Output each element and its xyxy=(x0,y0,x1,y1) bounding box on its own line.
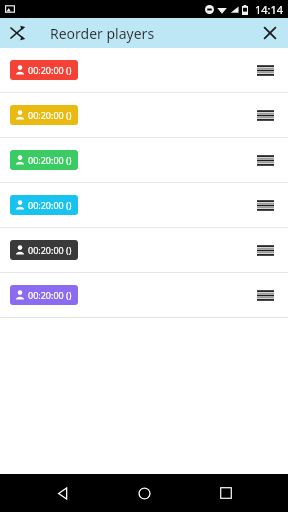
staticText: 00:20:00 () xyxy=(28,154,72,166)
button[interactable]: 00:20:00 () xyxy=(10,240,78,260)
button[interactable]: 00:20:00 () xyxy=(10,285,78,305)
button[interactable]: 00:20:00 () xyxy=(0,228,288,272)
button[interactable]: Drag to reorder xyxy=(252,147,278,173)
button[interactable]: 00:20:00 () xyxy=(0,48,288,92)
button[interactable]: Close xyxy=(256,19,284,47)
button[interactable]: Drag to reorder xyxy=(252,282,278,308)
staticText: 00:20:00 () xyxy=(28,64,72,76)
button[interactable]: Drag to reorder xyxy=(252,237,278,263)
button[interactable]: Home xyxy=(124,474,164,512)
staticText: 00:20:00 () xyxy=(28,109,72,121)
button[interactable]: 00:20:00 () xyxy=(10,150,78,170)
staticText: 00:20:00 () xyxy=(28,244,72,256)
button[interactable]: Drag to reorder xyxy=(252,57,278,83)
button[interactable]: 00:20:00 () xyxy=(10,195,78,215)
button[interactable]: 00:20:00 () xyxy=(0,93,288,137)
staticText: 00:20:00 () xyxy=(28,199,72,211)
button[interactable]: Shuffle players xyxy=(4,19,32,47)
button[interactable]: Back xyxy=(42,474,82,512)
button[interactable]: 00:20:00 () xyxy=(10,60,78,80)
button[interactable]: Drag to reorder xyxy=(252,102,278,128)
staticText: Reorder players xyxy=(50,24,155,43)
button[interactable]: Drag to reorder xyxy=(252,192,278,218)
button[interactable]: Recent apps xyxy=(206,474,246,512)
button[interactable]: 00:20:00 () xyxy=(0,183,288,227)
button[interactable]: 00:20:00 () xyxy=(0,273,288,317)
staticText: 14:14 xyxy=(255,2,284,17)
button[interactable]: 00:20:00 () xyxy=(0,138,288,182)
staticText: 00:20:00 () xyxy=(28,289,72,301)
button[interactable]: 00:20:00 () xyxy=(10,105,78,125)
